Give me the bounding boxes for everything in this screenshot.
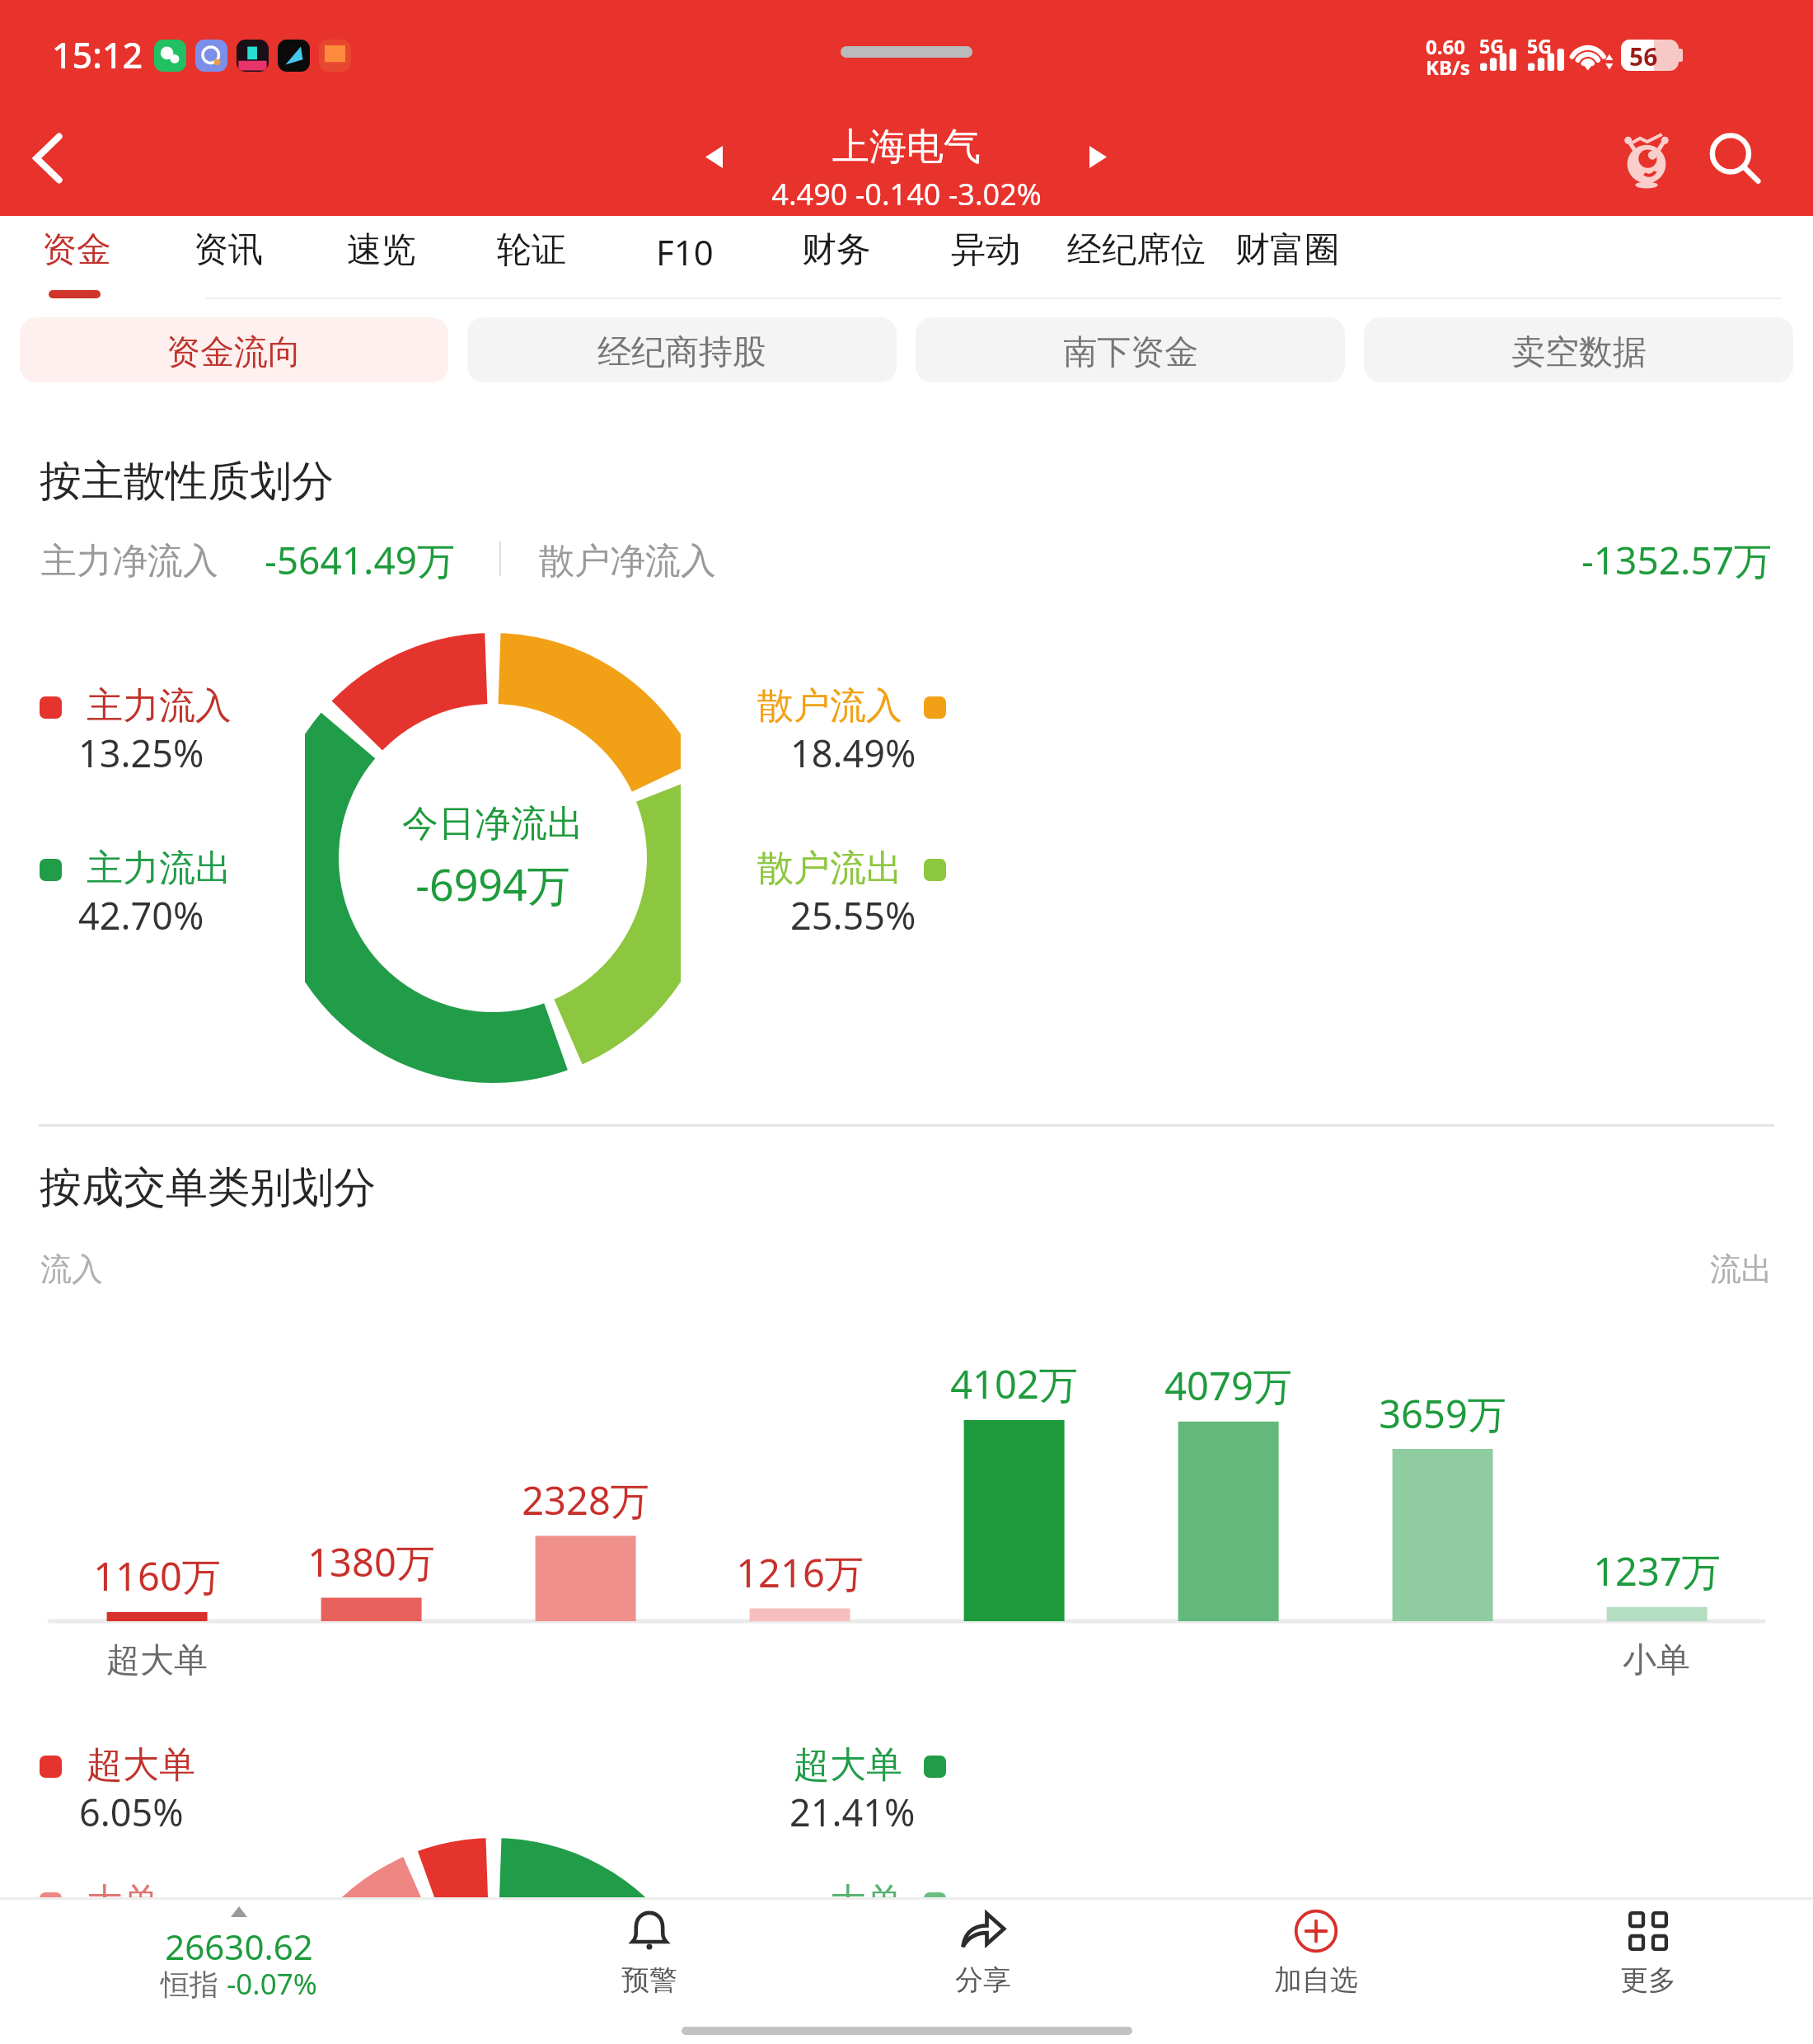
staticText: 财富圈 bbox=[1235, 228, 1339, 272]
staticText: 小单 bbox=[1623, 1639, 1690, 1682]
button[interactable]: 经纪席位 bbox=[1067, 228, 1206, 272]
staticText: 资金 bbox=[42, 228, 111, 272]
button[interactable]: Back bbox=[8, 119, 87, 198]
button[interactable]: 异动 bbox=[951, 228, 1020, 272]
staticText: 4079万 bbox=[1164, 1359, 1292, 1412]
staticText: 大单 bbox=[830, 1879, 902, 1924]
staticText: 1216万 bbox=[736, 1546, 864, 1599]
staticText: 速览 bbox=[347, 228, 416, 272]
staticText: 42.70% bbox=[78, 890, 204, 940]
staticText: -0.07% bbox=[227, 1964, 317, 2004]
staticText: 散户流出 bbox=[757, 846, 902, 891]
staticText: 13.25% bbox=[78, 728, 204, 778]
staticText: 56 bbox=[1629, 40, 1658, 71]
staticText: 南下资金 bbox=[1063, 331, 1198, 374]
staticText: 经纪商持股 bbox=[597, 331, 766, 374]
staticText: 26630.62 bbox=[165, 1923, 313, 1970]
staticText: 25.55% bbox=[790, 890, 916, 940]
button[interactable]: 财务 bbox=[802, 228, 871, 272]
button[interactable]: 卖空数据 bbox=[1364, 317, 1793, 382]
staticText: -6994万 bbox=[415, 855, 570, 913]
staticText: 今日净流出 bbox=[402, 801, 583, 846]
button[interactable]: 资金 bbox=[42, 228, 111, 272]
staticText: 3659万 bbox=[1379, 1387, 1506, 1440]
staticText: 1237万 bbox=[1593, 1545, 1721, 1597]
staticText: 超大单 bbox=[794, 1742, 902, 1788]
staticText: 超大单 bbox=[87, 1742, 195, 1788]
button[interactable]: 资讯 bbox=[194, 228, 263, 272]
button[interactable]: 26630.62 bbox=[0, 1897, 478, 2044]
button[interactable]: 经纪商持股 bbox=[467, 317, 897, 382]
button[interactable]: Next stock bbox=[1065, 124, 1131, 190]
staticText: 2328万 bbox=[522, 1474, 649, 1526]
staticText: 4.490 -0.140 -3.02% bbox=[771, 174, 1042, 214]
staticText: 6.05% bbox=[79, 1787, 184, 1837]
staticText: 经纪席位 bbox=[1067, 228, 1206, 272]
button[interactable]: 分享 bbox=[816, 1897, 1150, 2044]
staticText: 0.60 bbox=[1426, 33, 1465, 60]
staticText: KB/s bbox=[1426, 54, 1470, 81]
staticText: 按主散性质划分 bbox=[40, 455, 334, 508]
staticText: 流入 bbox=[40, 1249, 103, 1289]
button[interactable]: F10 bbox=[656, 228, 714, 275]
staticText: 分享 bbox=[955, 1962, 1011, 1998]
staticText: 上海电气 bbox=[832, 124, 981, 171]
button[interactable]: 速览 bbox=[347, 228, 416, 272]
staticText: 主力流出 bbox=[87, 846, 232, 891]
button[interactable]: 资金流向 bbox=[20, 317, 448, 382]
staticText: 主力流入 bbox=[87, 683, 232, 729]
staticText: 更多 bbox=[1620, 1962, 1676, 1998]
staticText: 轮证 bbox=[497, 228, 566, 272]
staticText: 超大单 bbox=[106, 1639, 208, 1682]
button[interactable]: 财富圈 bbox=[1235, 228, 1339, 272]
staticText: 5G bbox=[1527, 33, 1552, 59]
staticText: 15:12 bbox=[52, 30, 143, 79]
staticText: 资讯 bbox=[194, 228, 263, 272]
staticText: 1380万 bbox=[307, 1535, 435, 1588]
staticText: -1352.57万 bbox=[1581, 534, 1773, 586]
staticText: 按成交单类别划分 bbox=[40, 1161, 376, 1214]
staticText: 4102万 bbox=[950, 1357, 1078, 1410]
staticText: -5641.49万 bbox=[265, 534, 456, 586]
button[interactable]: 更多 bbox=[1481, 1897, 1813, 2044]
staticText: 21.41% bbox=[789, 1787, 916, 1837]
button[interactable]: 南下资金 bbox=[916, 317, 1345, 382]
button[interactable]: Previous stock bbox=[681, 124, 747, 190]
staticText: 1160万 bbox=[93, 1549, 221, 1602]
button[interactable]: 预警 bbox=[482, 1897, 816, 2044]
staticText: 主力净流入 bbox=[41, 539, 218, 584]
staticText: 预警 bbox=[621, 1962, 677, 1998]
staticText: 异动 bbox=[951, 228, 1020, 272]
staticText: 大单 bbox=[87, 1879, 159, 1924]
button[interactable]: AI assistant bbox=[1605, 119, 1688, 201]
staticText: 散户流入 bbox=[757, 683, 902, 729]
button[interactable]: Search bbox=[1694, 119, 1777, 201]
staticText: 散户净流入 bbox=[539, 539, 716, 584]
staticText: 流出 bbox=[1710, 1249, 1773, 1289]
staticText: 加自选 bbox=[1274, 1962, 1358, 1998]
staticText: 卖空数据 bbox=[1511, 331, 1647, 374]
staticText: 资金流向 bbox=[166, 331, 302, 374]
staticText: 5G bbox=[1479, 33, 1504, 59]
staticText: 财务 bbox=[802, 228, 871, 272]
staticText: 恒指 bbox=[161, 1964, 227, 2004]
button[interactable]: 加自选 bbox=[1149, 1897, 1483, 2044]
button[interactable]: 轮证 bbox=[497, 228, 566, 272]
staticText: 18.49% bbox=[790, 728, 916, 778]
staticText: F10 bbox=[656, 228, 714, 275]
